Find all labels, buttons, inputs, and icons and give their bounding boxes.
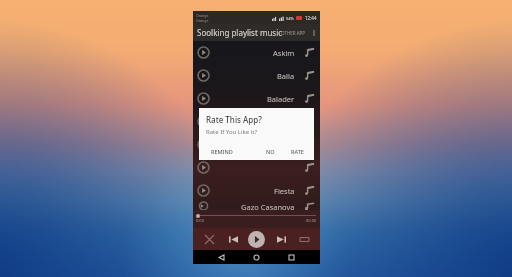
button[interactable]: Next <box>273 231 289 247</box>
staticText: 0:00 <box>196 218 204 223</box>
staticText: 12:44 <box>305 15 317 21</box>
button[interactable] <box>193 133 320 156</box>
staticText: Soolking playlist music <box>197 27 283 38</box>
button[interactable]: Balla <box>193 64 320 87</box>
button[interactable]: REMIND <box>206 145 238 158</box>
button[interactable]: Repeat <box>296 231 312 247</box>
button[interactable]: Recents <box>285 251 298 264</box>
button[interactable]: NO <box>261 145 280 158</box>
staticText: Orange <box>196 18 209 23</box>
staticText: Askim <box>273 48 295 58</box>
staticText: Gazo Casanova <box>241 202 295 210</box>
button[interactable]: More options <box>308 27 320 39</box>
staticText: 00:00 <box>306 218 317 223</box>
button[interactable]: Back <box>215 251 228 264</box>
button[interactable]: Gazo Casanova <box>193 202 320 210</box>
staticText: Orange <box>196 13 209 18</box>
button[interactable]: OTHER APP <box>279 27 308 39</box>
button[interactable]: RATE <box>286 145 309 158</box>
button[interactable] <box>193 156 320 179</box>
staticText: Fiesta <box>274 186 295 196</box>
staticText: Rate If You Like it? <box>206 128 258 136</box>
staticText: NO <box>266 148 275 155</box>
button[interactable]: Bye Bye <box>193 110 320 133</box>
staticText: OTHER APP <box>281 30 306 36</box>
staticText: RATE <box>291 148 304 155</box>
button[interactable]: Askim <box>193 41 320 64</box>
staticText: REMIND <box>211 148 233 155</box>
button[interactable]: Balader <box>193 87 320 110</box>
staticText: 54% <box>286 16 294 21</box>
button[interactable]: Play <box>248 231 265 248</box>
button[interactable]: Previous <box>225 231 241 247</box>
button[interactable]: Home <box>250 251 263 264</box>
staticText: Balla <box>277 71 295 81</box>
button[interactable]: Fiesta <box>193 179 320 202</box>
staticText: Balader <box>267 94 295 104</box>
staticText: Rate This App? <box>206 114 262 125</box>
button[interactable]: Shuffle <box>201 231 217 247</box>
